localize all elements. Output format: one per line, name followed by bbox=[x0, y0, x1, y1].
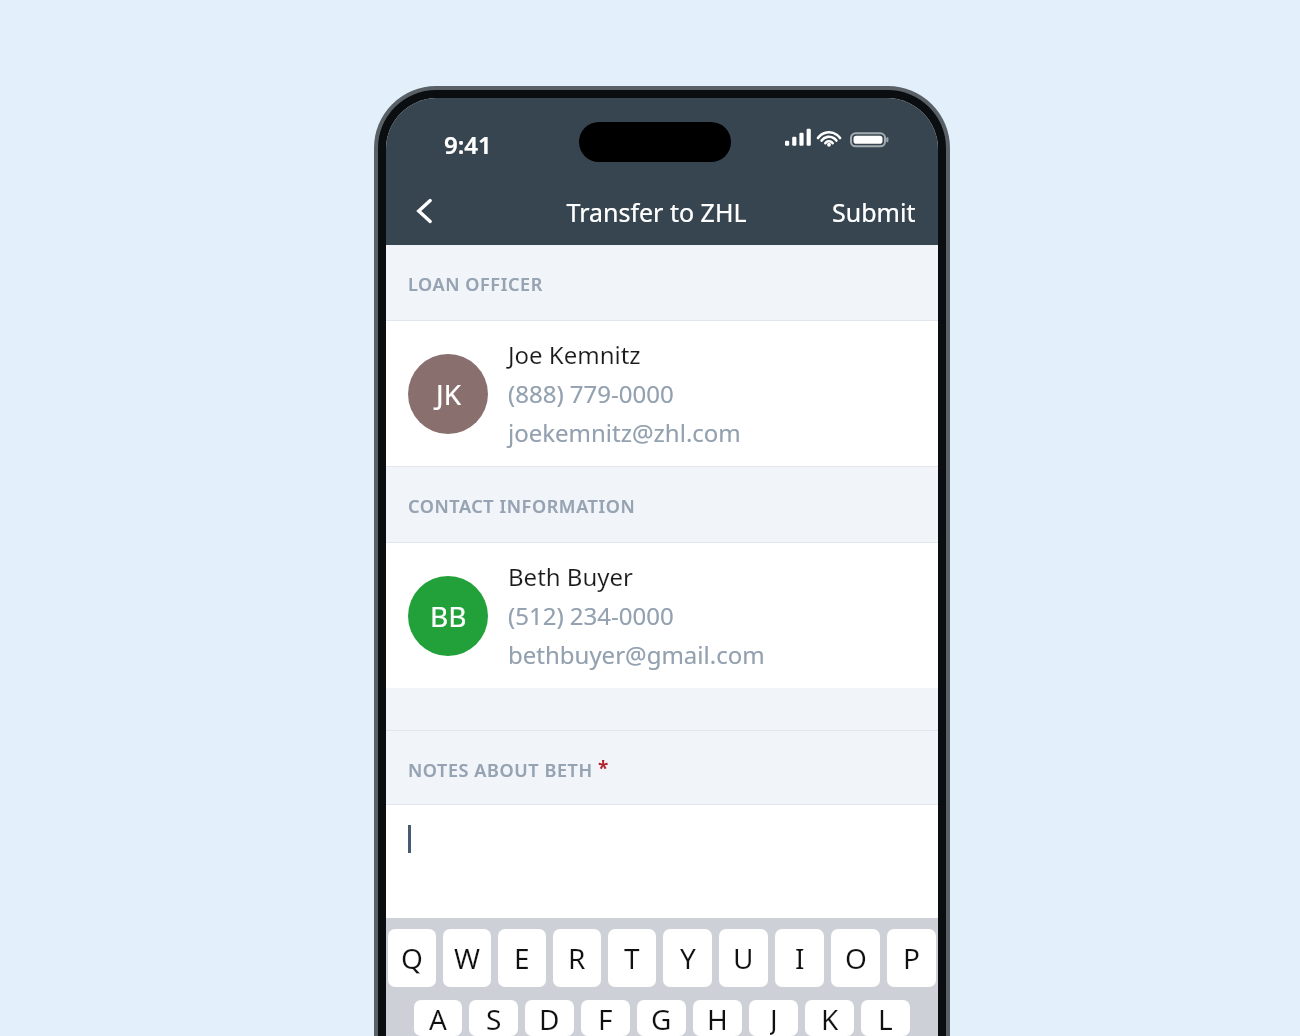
staticText: D bbox=[539, 1000, 560, 1036]
staticText: P bbox=[903, 939, 920, 977]
button[interactable]: Submit bbox=[824, 187, 924, 237]
staticText: JK bbox=[436, 375, 461, 413]
staticText: bethbuyer@gmail.com bbox=[508, 638, 765, 671]
staticText: S bbox=[486, 1000, 502, 1036]
button[interactable]: T bbox=[608, 929, 656, 987]
staticText: K bbox=[821, 1000, 839, 1036]
button[interactable]: L bbox=[861, 1000, 910, 1036]
button[interactable] bbox=[386, 805, 938, 918]
button[interactable]: BB bbox=[386, 543, 938, 688]
staticText: joekemnitz@zhl.com bbox=[508, 416, 741, 449]
button[interactable]: P bbox=[887, 929, 936, 987]
staticText: W bbox=[454, 939, 481, 977]
staticText: J bbox=[770, 1000, 778, 1036]
button[interactable]: Y bbox=[663, 929, 712, 987]
staticText: (512) 234-0000 bbox=[508, 599, 674, 632]
staticText: CONTACT INFORMATION bbox=[408, 494, 636, 519]
staticText: LOAN OFFICER bbox=[408, 272, 543, 297]
button[interactable]: E bbox=[498, 929, 546, 987]
staticText: T bbox=[624, 939, 640, 977]
staticText: NOTES ABOUT BETH bbox=[408, 758, 593, 783]
staticText: F bbox=[598, 1000, 613, 1036]
staticText: I bbox=[795, 939, 805, 977]
button[interactable]: J bbox=[749, 1000, 798, 1036]
staticText: Joe Kemnitz bbox=[508, 338, 641, 371]
button[interactable]: S bbox=[469, 1000, 518, 1036]
button[interactable]: K bbox=[805, 1000, 854, 1036]
staticText: 9:41 bbox=[444, 128, 492, 161]
staticText: G bbox=[651, 1000, 672, 1036]
staticText: R bbox=[568, 939, 586, 977]
staticText: (888) 779-0000 bbox=[508, 377, 674, 410]
button[interactable]: Back bbox=[398, 184, 452, 238]
staticText: A bbox=[429, 1000, 447, 1036]
staticText: U bbox=[733, 939, 754, 977]
button[interactable]: U bbox=[719, 929, 768, 987]
button[interactable]: H bbox=[693, 1000, 742, 1036]
staticText: Q bbox=[401, 939, 423, 977]
staticText: O bbox=[845, 939, 867, 977]
staticText: E bbox=[514, 939, 530, 977]
staticText: BB bbox=[430, 597, 467, 635]
button[interactable]: I bbox=[775, 929, 824, 987]
button[interactable]: W bbox=[443, 929, 491, 987]
staticText: H bbox=[707, 1000, 728, 1036]
button[interactable]: G bbox=[637, 1000, 686, 1036]
staticText: * bbox=[598, 755, 609, 781]
staticText: Transfer to ZHL bbox=[566, 195, 747, 229]
button[interactable]: D bbox=[525, 1000, 574, 1036]
button[interactable]: F bbox=[581, 1000, 630, 1036]
button[interactable]: Q bbox=[388, 929, 436, 987]
staticText: Beth Buyer bbox=[508, 560, 633, 593]
button[interactable]: JK bbox=[386, 321, 938, 466]
button[interactable]: O bbox=[831, 929, 880, 987]
button[interactable]: R bbox=[553, 929, 601, 987]
staticText: Y bbox=[680, 939, 696, 977]
button[interactable]: A bbox=[414, 1000, 462, 1036]
staticText: L bbox=[878, 1000, 893, 1036]
staticText: Submit bbox=[832, 195, 916, 229]
